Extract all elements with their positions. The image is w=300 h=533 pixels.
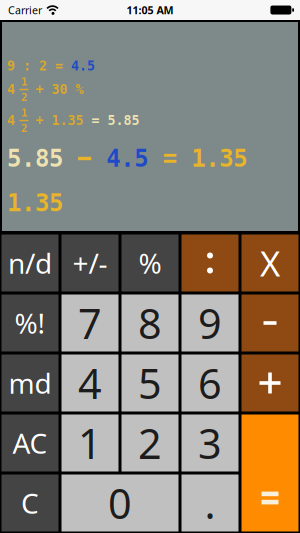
button[interactable]: AC (1, 414, 58, 471)
staticText: 2 (138, 416, 162, 470)
button[interactable]: 5 (121, 354, 178, 411)
button[interactable]: X (241, 234, 298, 291)
staticText: 4 (7, 113, 15, 128)
staticText: 1.35 (7, 189, 63, 217)
staticText: 1.35 (191, 145, 247, 172)
button[interactable]: %! (1, 294, 58, 351)
staticText: 2 (21, 91, 27, 103)
button[interactable]: equals (241, 414, 298, 531)
staticText: 9 (198, 296, 222, 350)
button[interactable]: 9 (181, 294, 238, 351)
staticText: 3 (198, 416, 222, 470)
staticText: + 1.35 (35, 113, 91, 128)
button[interactable]: 8 (121, 294, 178, 351)
button[interactable]: 7 (61, 294, 118, 351)
staticText: % (138, 244, 161, 282)
staticText: 0 (108, 476, 132, 530)
staticText: 9 : 2 = (7, 58, 71, 73)
button[interactable]: % (121, 234, 178, 291)
staticText: md (8, 364, 51, 402)
staticText: 5.85 (7, 145, 63, 172)
button[interactable]: +/- (61, 234, 118, 291)
staticText: AC (12, 424, 47, 462)
staticText: + 30 % (35, 82, 83, 97)
staticText: 11:05 AM (126, 3, 173, 17)
staticText: 1 (78, 416, 102, 470)
button[interactable]: 6 (181, 354, 238, 411)
button[interactable]: divide (181, 234, 238, 291)
staticText: 8 (138, 296, 162, 350)
button[interactable]: n/d (1, 234, 58, 291)
button[interactable]: 1 (61, 414, 118, 471)
staticText: 4.5 (106, 145, 148, 172)
staticText: 4 (78, 356, 102, 410)
staticText: 1 (21, 107, 27, 119)
staticText: +/- (72, 244, 107, 282)
button[interactable]: md (1, 354, 58, 411)
button[interactable]: 3 (181, 414, 238, 471)
button[interactable]: minus (241, 294, 298, 351)
staticText: 2 (21, 122, 27, 134)
button[interactable]: . (181, 474, 238, 531)
staticText: Carrier (8, 3, 42, 17)
staticText: %! (14, 304, 45, 342)
staticText: 4.5 (71, 58, 95, 73)
staticText: C (21, 484, 39, 522)
staticText: 5 (138, 356, 162, 410)
button[interactable]: 4 (61, 354, 118, 411)
button[interactable]: C (1, 474, 58, 531)
staticText: 7 (78, 296, 102, 350)
staticText: 1 (21, 76, 27, 88)
staticText: n/d (8, 244, 52, 282)
staticText: = 5.85 (91, 113, 139, 128)
button[interactable]: 2 (121, 414, 178, 471)
button[interactable]: 0 (61, 474, 178, 531)
staticText: X (260, 240, 280, 286)
staticText: 6 (198, 356, 222, 410)
staticText: . (204, 476, 215, 530)
staticText: 4 (7, 82, 15, 97)
staticText: = (163, 145, 177, 172)
button[interactable]: plus (241, 354, 298, 411)
